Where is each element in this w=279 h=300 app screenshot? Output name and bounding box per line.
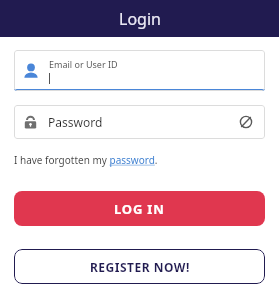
button[interactable]: Show password (235, 111, 257, 133)
staticText: Login (119, 8, 161, 30)
button[interactable]: Email or User ID (14, 50, 265, 91)
staticText: LOG IN (114, 200, 165, 218)
staticText: Email or User ID (49, 58, 118, 70)
staticText: Password (48, 114, 103, 130)
button[interactable]: REGISTER NOW! (14, 249, 265, 284)
button[interactable]: Password (14, 105, 265, 139)
staticText: I have forgotten my password. (14, 153, 158, 167)
staticText: REGISTER NOW! (90, 259, 190, 275)
button[interactable]: LOG IN (14, 191, 265, 226)
button[interactable]: I have forgotten my password. (14, 153, 158, 167)
